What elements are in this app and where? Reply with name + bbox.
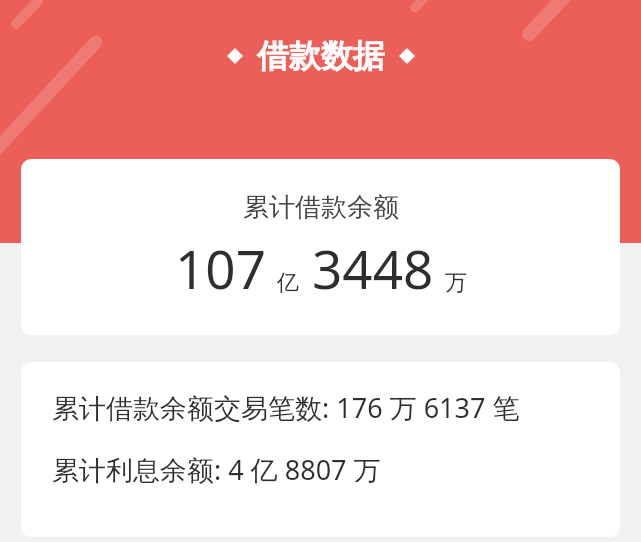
staticText: 3448 bbox=[312, 232, 434, 304]
staticText: 107 bbox=[175, 232, 266, 304]
staticText: 借款数据 bbox=[257, 36, 385, 76]
staticText: 累计借款余额 bbox=[243, 191, 399, 224]
staticText: 万 bbox=[445, 269, 467, 297]
button[interactable]: Diamond ornament bbox=[217, 33, 425, 79]
button[interactable]: 累计借款余额交易笔数: 176 万 6137 笔 bbox=[21, 362, 620, 537]
staticText: 累计利息余额: 4 亿 8807 万 bbox=[52, 451, 381, 488]
staticText: 累计借款余额交易笔数: 176 万 6137 笔 bbox=[52, 389, 520, 426]
other: Diamond ornament bbox=[399, 48, 415, 64]
staticText: 亿 bbox=[277, 269, 299, 297]
button[interactable]: 累计借款余额 bbox=[21, 159, 620, 335]
other: Diamond ornament bbox=[227, 48, 243, 64]
